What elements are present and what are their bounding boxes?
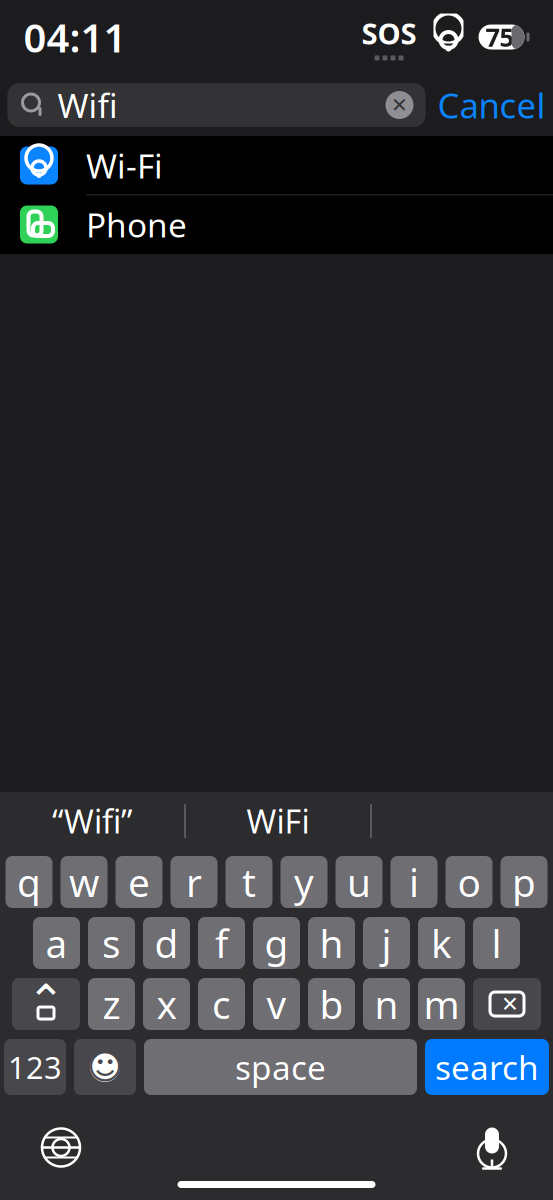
- button[interactable]: m: [418, 978, 465, 1030]
- button[interactable]: s: [88, 917, 135, 969]
- button[interactable]: i: [390, 856, 437, 908]
- button[interactable]: l: [473, 917, 520, 969]
- button[interactable]: j: [363, 917, 410, 969]
- staticText: p: [512, 856, 536, 908]
- button[interactable]: q: [5, 856, 52, 908]
- button[interactable]: v: [253, 978, 300, 1030]
- button[interactable]: u: [335, 856, 382, 908]
- staticText: WiFi: [246, 800, 309, 842]
- staticText: e: [128, 856, 150, 908]
- staticText: Wi-Fi: [86, 143, 163, 188]
- button[interactable]: c: [198, 978, 245, 1030]
- button[interactable]: h: [308, 917, 355, 969]
- button[interactable]: search: [425, 1039, 549, 1095]
- button[interactable]: r: [170, 856, 217, 908]
- staticText: b: [319, 978, 343, 1030]
- staticText: x: [156, 978, 176, 1030]
- staticText: o: [457, 856, 480, 908]
- staticText: ⌃: [27, 975, 65, 1027]
- button[interactable]: w: [60, 856, 107, 908]
- button[interactable]: e: [115, 856, 162, 908]
- button[interactable]: b: [308, 978, 355, 1030]
- button[interactable]: Next keyboard: [26, 1116, 96, 1178]
- staticText: ✕: [501, 992, 519, 1016]
- button[interactable]: WiFi: [186, 795, 370, 847]
- staticText: k: [431, 917, 452, 969]
- staticText: j: [381, 917, 391, 969]
- button[interactable]: x: [143, 978, 190, 1030]
- staticText: ✕: [391, 94, 408, 116]
- staticText: t: [242, 856, 256, 908]
- button[interactable]: Delete: [473, 978, 541, 1030]
- button[interactable]: p: [500, 856, 547, 908]
- staticText: v: [266, 978, 286, 1030]
- staticText: i: [409, 856, 419, 908]
- button[interactable]: a: [33, 917, 80, 969]
- button[interactable]: o: [445, 856, 492, 908]
- staticText: a: [45, 917, 67, 969]
- button[interactable]: Phone: [0, 195, 553, 253]
- staticText: f: [215, 917, 228, 969]
- button[interactable]: Clear text: [377, 83, 421, 127]
- button[interactable]: n: [363, 978, 410, 1030]
- button[interactable]: f: [198, 917, 245, 969]
- button[interactable]: k: [418, 917, 465, 969]
- staticText: u: [347, 856, 371, 908]
- button[interactable]: Shift: [12, 978, 80, 1030]
- button[interactable]: Wi-Fi: [0, 136, 553, 194]
- button[interactable]: d: [143, 917, 190, 969]
- staticText: 04:11: [23, 10, 126, 63]
- staticText: Wifi: [57, 83, 117, 127]
- staticText: space: [235, 1045, 326, 1089]
- button[interactable]: Dictation: [457, 1116, 527, 1178]
- staticText: Phone: [86, 202, 187, 247]
- staticText: n: [374, 978, 398, 1030]
- button[interactable]: 123: [4, 1039, 66, 1095]
- staticText: l: [491, 917, 501, 969]
- staticText: c: [212, 978, 231, 1030]
- staticText: h: [319, 917, 343, 969]
- staticText: 75: [485, 20, 513, 54]
- button[interactable]: “Wifi”: [0, 795, 184, 847]
- button[interactable]: t: [225, 856, 272, 908]
- staticText: s: [102, 917, 121, 969]
- button[interactable]: y: [280, 856, 327, 908]
- staticText: q: [17, 856, 41, 908]
- staticText: d: [154, 917, 178, 969]
- staticText: Cancel: [437, 82, 545, 128]
- staticText: search: [435, 1045, 539, 1089]
- button[interactable]: Cancel: [425, 83, 553, 127]
- button[interactable]: z: [88, 978, 135, 1030]
- staticText: z: [102, 978, 120, 1030]
- staticText: ☺: [87, 1047, 123, 1087]
- staticText: r: [186, 856, 202, 908]
- button[interactable]: Emoji: [74, 1039, 136, 1095]
- staticText: w: [69, 856, 99, 908]
- staticText: “Wifi”: [52, 800, 132, 842]
- staticText: 123: [8, 1047, 62, 1087]
- button[interactable]: g: [253, 917, 300, 969]
- staticText: y: [294, 856, 314, 908]
- staticText: m: [423, 978, 459, 1030]
- staticText: SOS: [361, 13, 416, 52]
- staticText: g: [264, 917, 288, 969]
- button[interactable]: space: [144, 1039, 417, 1095]
